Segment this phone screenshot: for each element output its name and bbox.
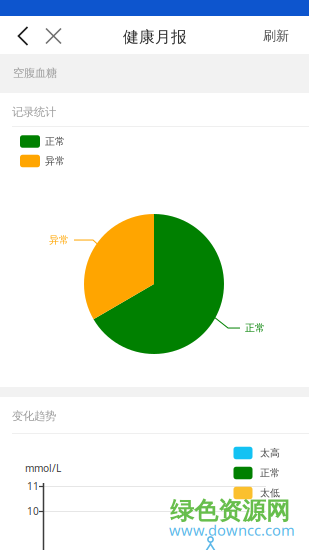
staticText: 绿色资源网: [170, 496, 290, 526]
staticText: 空腹血糖: [13, 66, 57, 80]
staticText: 正常: [260, 467, 280, 479]
button[interactable]: Back: [8, 17, 38, 55]
staticText: 11: [27, 479, 39, 493]
staticText: 太高: [260, 447, 280, 459]
staticText: 异常: [45, 155, 65, 167]
button[interactable]: Close: [38, 17, 69, 55]
staticText: 记录统计: [12, 105, 56, 119]
staticText: 变化趋势: [12, 409, 56, 423]
staticText: 正常: [45, 135, 65, 148]
staticText: 异常: [49, 234, 69, 246]
staticText: 10: [27, 504, 39, 518]
staticText: 健康月报: [123, 27, 187, 47]
staticText: www.downcc.com: [169, 520, 295, 540]
button[interactable]: 刷新: [251, 17, 301, 55]
staticText: 刷新: [263, 28, 289, 44]
staticText: mmol/L: [25, 461, 61, 475]
staticText: 正常: [245, 322, 265, 334]
staticText: 太低: [260, 487, 280, 499]
